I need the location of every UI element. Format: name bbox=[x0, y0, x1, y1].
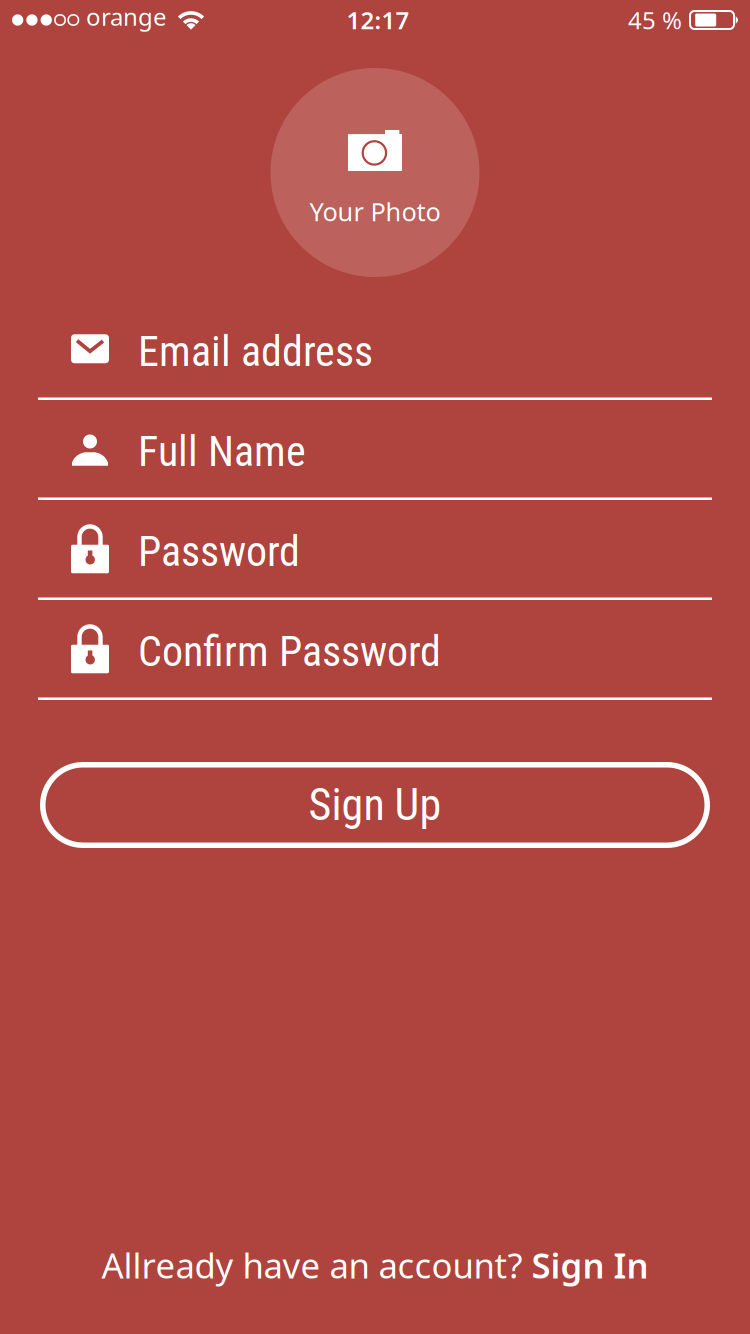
staticText: Confirm Password bbox=[138, 627, 441, 676]
button[interactable]: Email address bbox=[0, 300, 750, 400]
button[interactable]: Confirm Password bbox=[0, 600, 750, 700]
staticText: Sign Up bbox=[308, 779, 441, 831]
staticText: 12:17 bbox=[346, 4, 409, 36]
button[interactable]: Password bbox=[0, 500, 750, 600]
staticText: Email address bbox=[138, 327, 373, 376]
button[interactable]: Full Name bbox=[0, 400, 750, 500]
staticText: Full Name bbox=[138, 427, 306, 476]
staticText: orange bbox=[86, 1, 167, 32]
staticText: Your Photo bbox=[309, 195, 440, 228]
staticText: 45 % bbox=[628, 4, 682, 36]
button[interactable]: Allready have an account? Sign In bbox=[101, 1242, 648, 1288]
button[interactable]: Sign Up bbox=[40, 762, 710, 848]
button[interactable]: Choose your photo bbox=[270, 68, 479, 277]
staticText: Allready have an account? Sign In bbox=[101, 1242, 648, 1288]
staticText: Password bbox=[138, 527, 300, 576]
